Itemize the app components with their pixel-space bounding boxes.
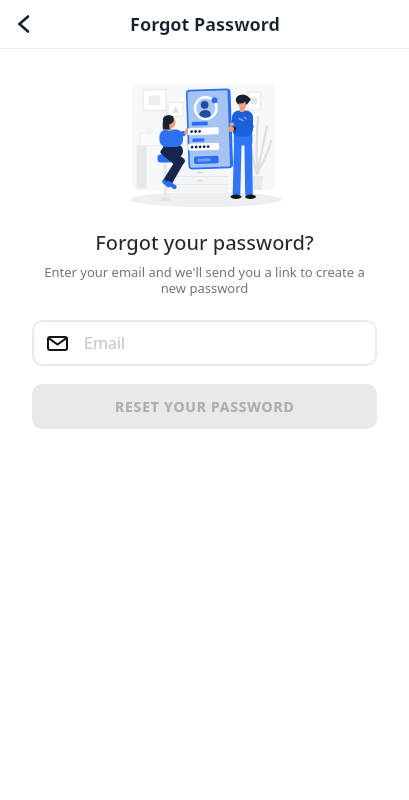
button[interactable]: RESET YOUR PASSWORD <box>32 384 377 429</box>
button[interactable]: Email <box>32 320 377 366</box>
staticText: Forgot your password? <box>0 229 409 256</box>
staticText: Forgot Password <box>130 12 280 37</box>
button[interactable] <box>0 0 48 48</box>
staticText: Email <box>84 332 126 354</box>
staticText: RESET YOUR PASSWORD <box>115 397 295 416</box>
staticText: Enter your email and we'll send you a li… <box>0 263 409 296</box>
